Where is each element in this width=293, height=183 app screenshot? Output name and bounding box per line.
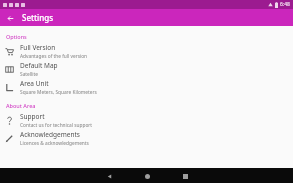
staticText: Contact us for technical support (20, 122, 93, 129)
button[interactable]: Back (4, 12, 16, 24)
staticText: Square Meters, Square Kilometers (20, 89, 97, 96)
staticText: Satellite (20, 71, 38, 78)
staticText: Default Map (20, 61, 58, 70)
staticText: Full Version (20, 43, 56, 52)
staticText: 6:48 (280, 1, 290, 8)
staticText: Settings (22, 12, 54, 23)
button[interactable]: Support (0, 111, 293, 129)
staticText: About Area (6, 102, 36, 109)
staticText: Area Unit (20, 79, 49, 88)
button[interactable]: Home (140, 169, 154, 183)
button[interactable]: Acknowledgements (0, 129, 293, 147)
staticText: Acknowledgements (20, 130, 80, 139)
button[interactable]: Default Map (0, 60, 293, 78)
button[interactable]: Full Version (0, 42, 293, 60)
staticText: Support (20, 112, 45, 121)
button[interactable]: Area Unit (0, 78, 293, 96)
staticText: Advantages of the full version (20, 53, 88, 60)
staticText: Licences & acknowledgements (20, 140, 89, 147)
button[interactable]: Recents (178, 169, 192, 183)
staticText: Options (6, 33, 27, 40)
button[interactable]: Back (102, 169, 116, 183)
